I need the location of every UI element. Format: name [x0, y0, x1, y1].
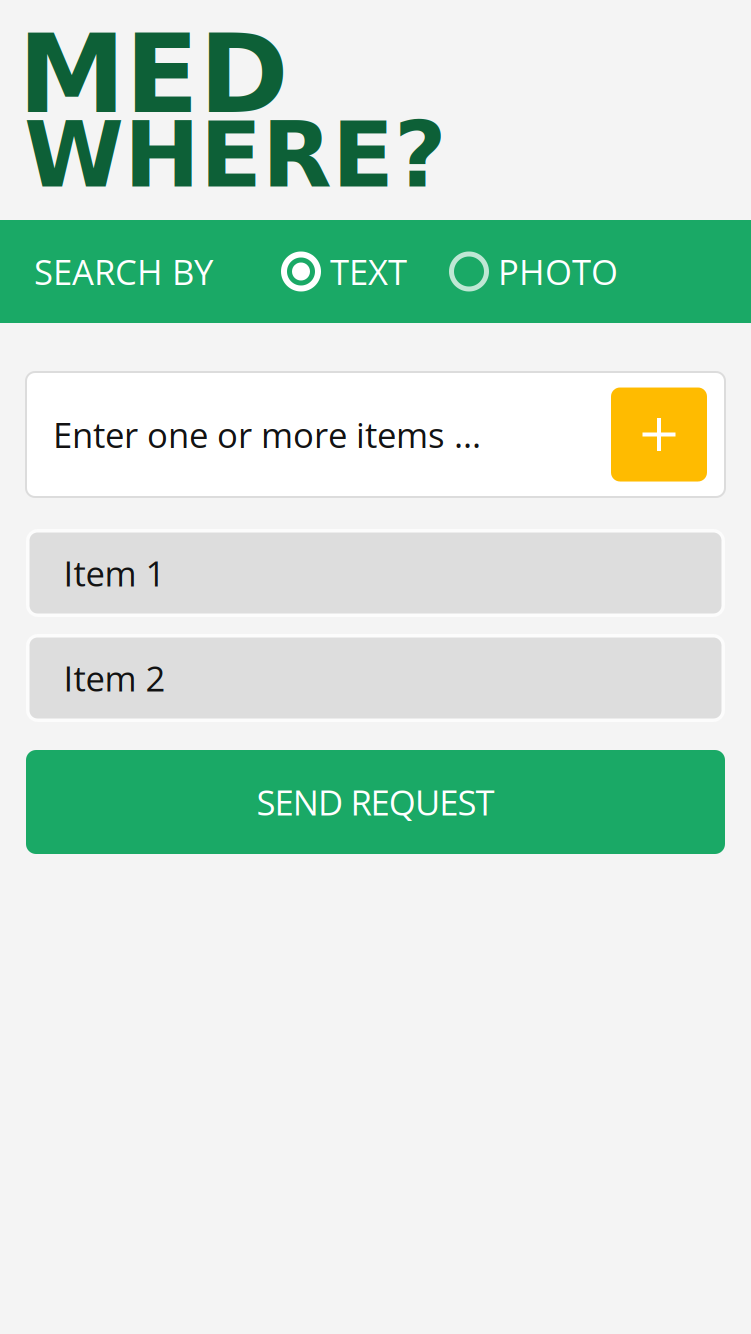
staticText: TEXT	[330, 248, 407, 295]
staticText: Item 1	[63, 549, 165, 597]
button[interactable]: SEND REQUEST	[26, 750, 725, 854]
button[interactable]: Item 2	[26, 634, 725, 722]
staticText: SEND REQUEST	[256, 778, 495, 826]
staticText: Item 2	[63, 654, 165, 702]
button[interactable]: TEXT	[281, 248, 407, 295]
staticText: PHOTO	[498, 248, 618, 295]
staticText: MED	[18, 12, 289, 137]
button[interactable]: PHOTO	[449, 248, 618, 295]
button[interactable]: Add item	[611, 387, 707, 481]
staticText: Enter one or more items ...	[53, 411, 481, 458]
staticText: SEARCH BY	[34, 248, 213, 295]
staticText: WHERE?	[24, 102, 447, 208]
button[interactable]: Item 1	[26, 529, 725, 617]
